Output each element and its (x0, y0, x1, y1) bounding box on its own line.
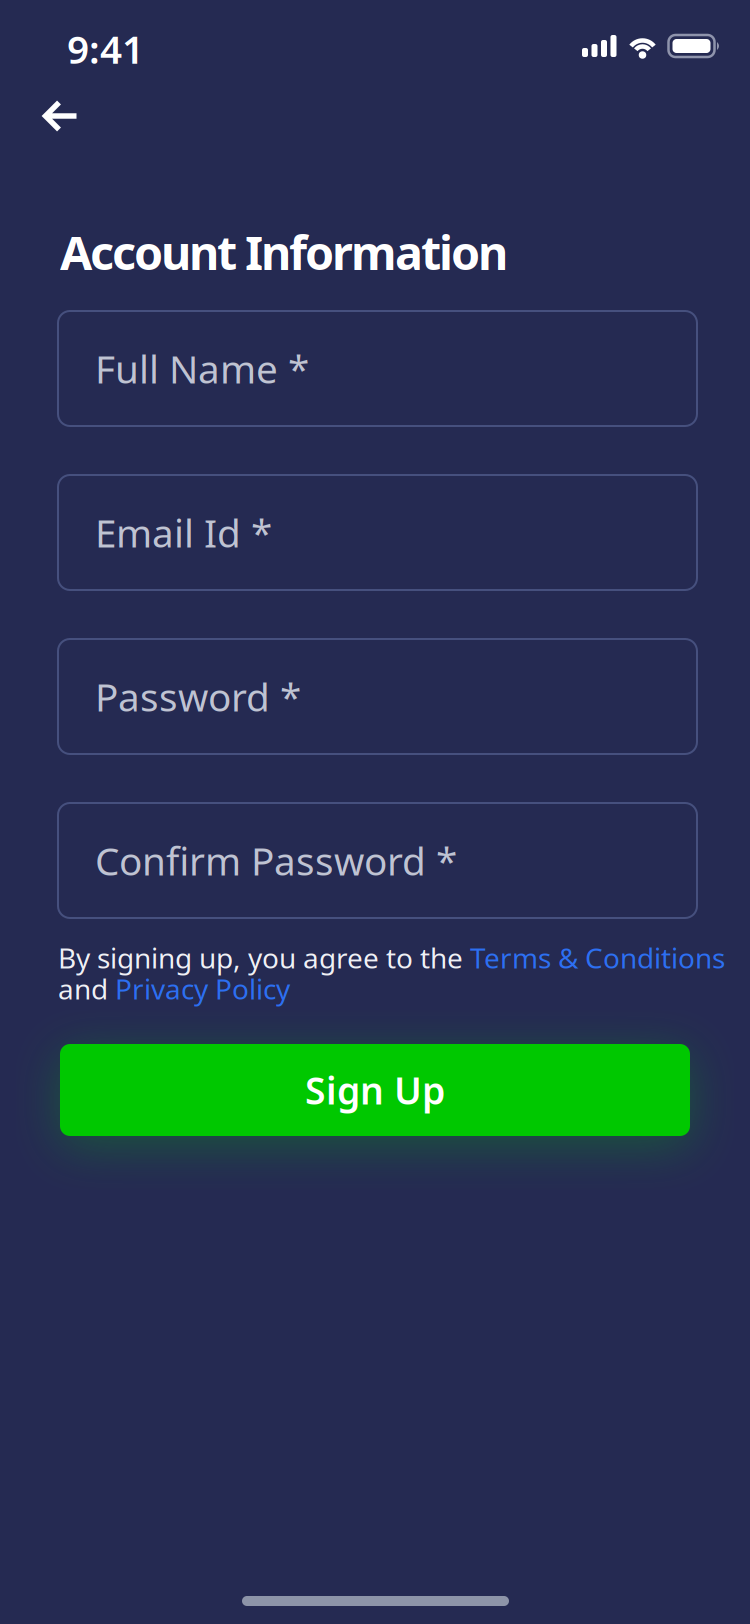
staticText: Confirm Password * (95, 835, 457, 886)
staticText: Sign Up (305, 1065, 445, 1115)
button[interactable] (43, 100, 78, 132)
button[interactable]: Full Name * (58, 311, 697, 426)
staticText: Full Name * (95, 343, 309, 394)
staticText: Password * (95, 671, 301, 722)
button[interactable]: Sign Up (60, 1044, 690, 1136)
button[interactable]: Terms & Conditions (470, 939, 725, 976)
staticText: Terms & Conditions (470, 939, 725, 976)
button[interactable]: Privacy Policy (115, 970, 290, 1007)
staticText: Email Id * (95, 507, 272, 558)
button[interactable]: Password * (58, 639, 697, 754)
staticText: 9:41 (67, 23, 144, 74)
button[interactable]: Email Id * (58, 475, 697, 590)
staticText: Privacy Policy (115, 970, 290, 1007)
button[interactable]: Confirm Password * (58, 803, 697, 918)
staticText: and (58, 970, 115, 1007)
staticText: Account Information (60, 221, 508, 283)
staticText: By signing up, you agree to the (58, 939, 470, 976)
